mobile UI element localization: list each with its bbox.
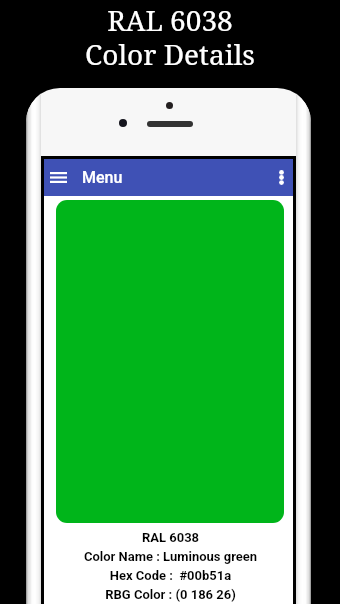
staticText: RAL 6038 Color Details bbox=[0, 1, 340, 73]
button[interactable]: Open navigation menu bbox=[44, 159, 72, 196]
staticText: Menu bbox=[82, 168, 123, 187]
button[interactable]: More options bbox=[267, 159, 295, 196]
staticText: RAL 6038 Color Name : Luminous green Hex… bbox=[46, 530, 295, 602]
